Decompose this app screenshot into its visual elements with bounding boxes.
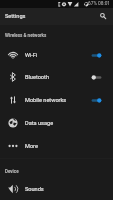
staticText: Wi-Fi [25,52,91,59]
button[interactable]: More [0,135,113,157]
button[interactable]: Data usage [0,112,113,134]
staticText: Settings [5,13,26,20]
staticText: Wireless & networks [5,33,47,38]
button[interactable]: Bluetooth [0,66,113,88]
button[interactable]: Mobile networks [0,89,113,111]
staticText: Sounds [25,186,113,193]
button[interactable]: Wi-Fi [0,44,113,66]
staticText: Data usage [25,120,113,127]
staticText: Bluetooth [25,74,91,81]
button[interactable]: Search [96,9,109,22]
staticText: Device [5,169,19,174]
staticText: More [25,143,113,150]
button[interactable]: Sounds [0,178,113,200]
staticText: 67% 08:01 [88,1,111,7]
staticText: Mobile networks [25,97,91,104]
